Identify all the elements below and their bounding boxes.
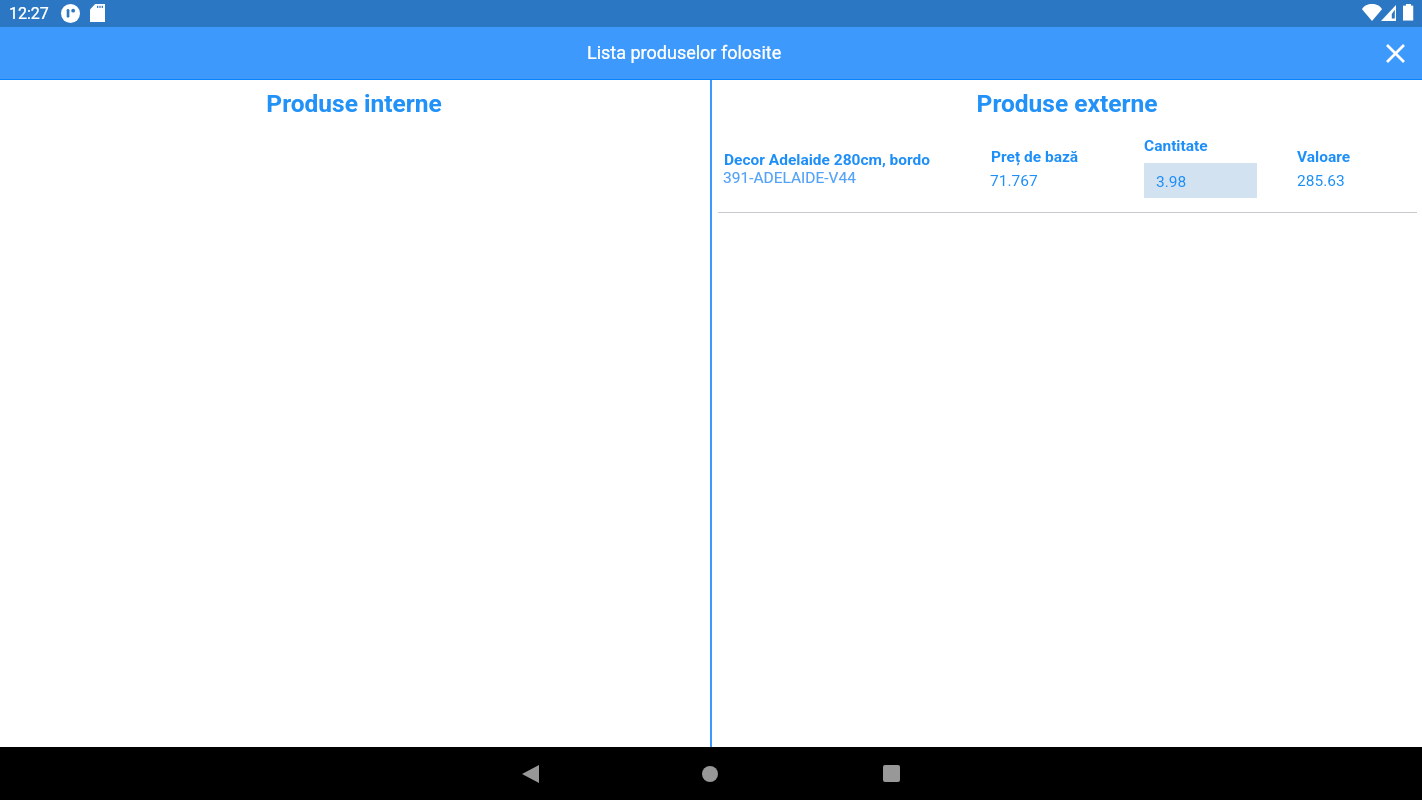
staticText: Produse interne bbox=[0, 89, 709, 118]
button[interactable]: Decor Adelaide 280cm, bordo bbox=[712, 130, 1422, 213]
button[interactable]: Cantitate bbox=[1144, 163, 1257, 198]
staticText: 285.63 bbox=[1297, 172, 1345, 190]
staticText: Cantitate bbox=[1144, 137, 1208, 155]
button[interactable]: Home bbox=[686, 747, 734, 800]
button[interactable]: Închide bbox=[1371, 29, 1419, 77]
staticText: 3.98 bbox=[1156, 173, 1187, 191]
staticText: Lista produselor folosite bbox=[587, 42, 782, 63]
staticText: 391-ADELAIDE-V44 bbox=[723, 169, 856, 187]
button[interactable]: Back bbox=[506, 747, 554, 800]
button[interactable]: Recent apps bbox=[867, 747, 915, 800]
staticText: Valoare bbox=[1297, 148, 1351, 166]
staticText: 12:27 bbox=[9, 4, 49, 23]
staticText: 71.767 bbox=[990, 172, 1038, 190]
staticText: Produse externe bbox=[711, 89, 1422, 118]
staticText: Preț de bază bbox=[991, 148, 1079, 166]
staticText: Decor Adelaide 280cm, bordo bbox=[724, 151, 931, 169]
